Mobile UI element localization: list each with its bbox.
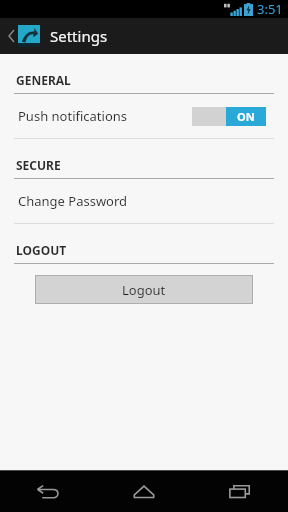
staticText: 3:51 (257, 0, 283, 18)
staticText: ON (237, 109, 255, 124)
staticText: Settings (50, 26, 108, 46)
button[interactable]: Logout (36, 276, 252, 303)
button[interactable]: Push notifications on (192, 107, 266, 126)
staticText: Change Password (18, 192, 128, 210)
button[interactable]: Recent apps (192, 471, 288, 512)
button[interactable]: Navigate up (4, 18, 18, 54)
staticText: GENERAL (16, 72, 71, 88)
button[interactable]: Push notifications (0, 94, 288, 138)
staticText: Push notifications (18, 107, 128, 125)
staticText: LOGOUT (16, 242, 67, 258)
staticText: SECURE (16, 157, 61, 173)
button[interactable]: Change Password (0, 179, 288, 223)
button[interactable]: Back (0, 471, 96, 512)
staticText: Logout (122, 281, 166, 299)
button[interactable]: Home (96, 471, 192, 512)
